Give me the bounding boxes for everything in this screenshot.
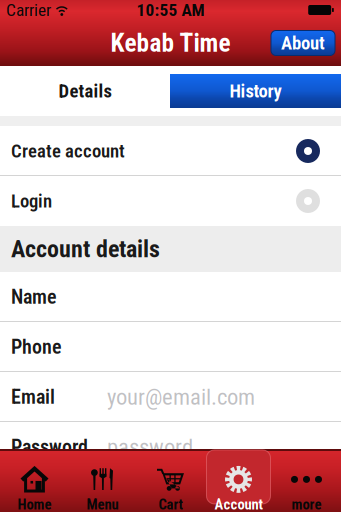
button[interactable]: About [271,30,335,55]
staticText: Login [11,190,52,212]
button[interactable]: Menu [68,449,136,512]
staticText: your@email.com [107,384,255,410]
staticText: 10:55 AM [136,0,204,20]
staticText: Cart [158,496,182,512]
staticText: Home [17,496,51,512]
button[interactable]: Name [0,272,341,322]
staticText: Email [11,385,55,409]
staticText: Menu [86,496,118,512]
staticText: Account [214,496,262,512]
staticText: more [291,496,321,512]
staticText: Account details [11,235,160,263]
staticText: Name [11,285,57,309]
button[interactable]: more [272,449,340,512]
staticText: History [229,80,281,102]
button[interactable]: Phone [0,322,341,372]
staticText: Password [11,435,88,459]
button[interactable]: Home [0,449,68,512]
button[interactable]: Password [0,422,341,472]
button[interactable]: Details [0,74,170,108]
button[interactable]: Login [0,176,341,226]
staticText: Details [58,80,111,102]
staticText: password [107,434,193,460]
button[interactable]: Cart [136,449,204,512]
button[interactable]: Email [0,372,341,422]
staticText: Phone [11,335,62,359]
staticText: Carrier [6,0,51,20]
button[interactable]: Account [204,449,272,512]
button[interactable]: Create account [0,126,341,176]
button[interactable]: History [170,74,341,108]
staticText: Kebab Time [110,28,230,58]
staticText: Create account [11,140,125,162]
staticText: About [281,32,325,54]
